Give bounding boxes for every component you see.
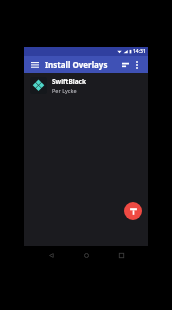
button[interactable]: Sort [119,59,131,71]
button[interactable]: Apply overlay [124,202,142,220]
staticText: 14:31 [133,48,146,55]
button[interactable]: Back [43,247,59,263]
staticText: Per Lycke [52,87,77,94]
button[interactable]: Home [78,247,94,263]
staticText: SwiftBlack [52,77,86,86]
button[interactable]: More options [131,59,143,71]
button[interactable]: Open navigation drawer [29,59,41,71]
button[interactable]: SwiftBlack [24,73,148,97]
staticText: Install Overlays [45,59,119,70]
button[interactable]: Recent apps [113,247,129,263]
